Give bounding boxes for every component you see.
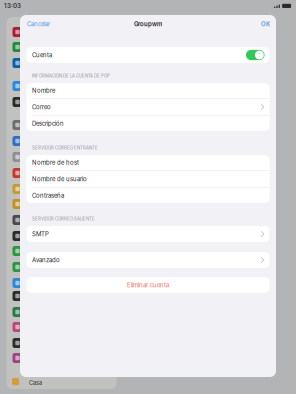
button[interactable]: Nombre de usuario — [26, 171, 269, 187]
staticText: Avanzado — [32, 256, 60, 264]
button[interactable]: OK — [261, 20, 270, 28]
staticText: 13:03 — [4, 2, 21, 9]
staticText: SERVIDOR CORREO ENTRANTE — [32, 145, 98, 151]
staticText: Eliminar cuenta — [127, 281, 169, 289]
staticText: Cancelar — [27, 20, 50, 28]
button[interactable]: SMTP — [26, 226, 269, 242]
button[interactable]: Descripción — [26, 115, 269, 131]
staticText: Nombre — [32, 87, 55, 94]
staticText: SERVIDOR CORREO SALIENTE — [32, 216, 95, 222]
button[interactable]: Nombre — [26, 82, 269, 98]
staticText: OK — [261, 20, 270, 28]
staticText: Nombre de usuario — [32, 175, 87, 183]
button[interactable]: Cancelar — [27, 20, 50, 28]
staticText: Cuenta — [32, 51, 52, 59]
staticText: Contraseña — [32, 192, 64, 199]
button[interactable]: Eliminar cuenta — [26, 277, 269, 293]
staticText: Descripción — [32, 120, 64, 127]
staticText: Correo — [32, 103, 51, 111]
staticText: Casa — [29, 379, 42, 386]
staticText: Nombre de host — [32, 159, 79, 166]
button[interactable]: Nombre de host — [26, 154, 269, 170]
button[interactable]: Correo — [26, 99, 269, 115]
button[interactable]: Contraseña — [26, 187, 269, 203]
staticText: SMTP — [32, 230, 49, 238]
staticText: Groupwm — [134, 20, 162, 28]
button[interactable]: Avanzado — [26, 252, 269, 268]
staticText: INFORMACIÓN DE LA CUENTA DE POP — [32, 73, 110, 79]
